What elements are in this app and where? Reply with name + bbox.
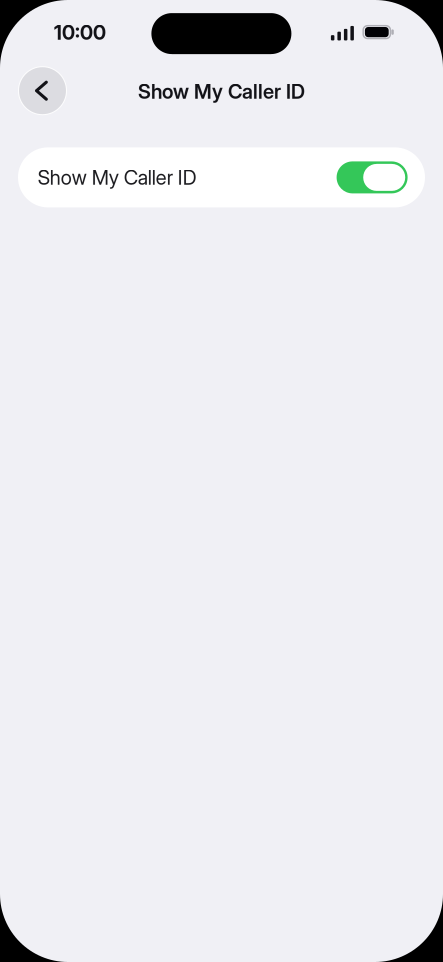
- staticText: Show My Caller ID: [138, 79, 305, 104]
- button[interactable]: Back: [18, 66, 67, 115]
- staticText: Show My Caller ID: [38, 165, 197, 189]
- staticText: 10:00: [54, 20, 106, 44]
- button[interactable]: Show My Caller ID: [18, 147, 425, 207]
- button[interactable]: Show My Caller ID, on: [337, 161, 408, 193]
